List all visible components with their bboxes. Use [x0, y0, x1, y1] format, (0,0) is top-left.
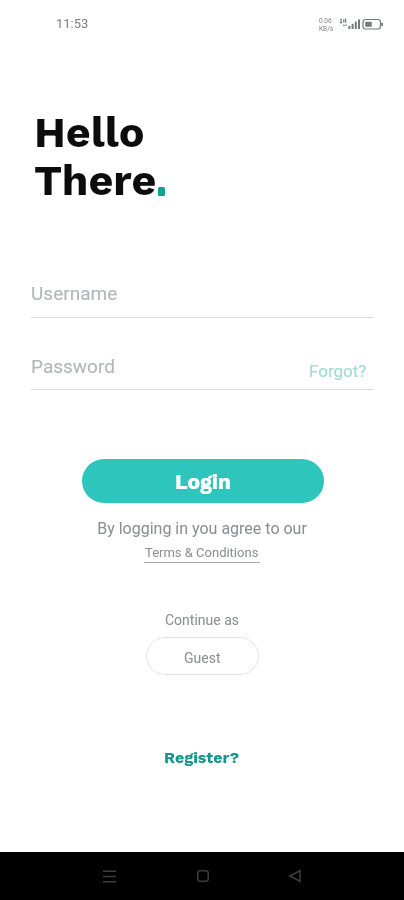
- staticText: Hello: [34, 107, 145, 157]
- button[interactable]: Back: [275, 856, 315, 896]
- staticText: Password: [31, 355, 115, 377]
- staticText: 11:53: [56, 16, 89, 31]
- staticText: 0.06: [319, 17, 332, 25]
- button[interactable]: Forgot?: [309, 361, 367, 381]
- staticText: Forgot?: [309, 361, 367, 381]
- staticText: Terms & Conditions: [145, 545, 259, 560]
- button[interactable]: Recent apps: [89, 856, 129, 896]
- staticText: Continue as: [0, 612, 404, 628]
- staticText: Guest: [184, 650, 221, 666]
- button[interactable]: Terms & Conditions: [144, 545, 260, 563]
- staticText: There: [34, 155, 157, 205]
- staticText: Username: [31, 282, 118, 304]
- staticText: KB/s: [319, 25, 334, 33]
- staticText: By logging in you agree to our: [0, 519, 404, 538]
- button[interactable]: Home: [183, 856, 223, 896]
- staticText: Login: [175, 469, 231, 494]
- button[interactable]: Register?: [164, 748, 240, 767]
- button[interactable]: Guest: [146, 637, 259, 675]
- staticText: Register?: [164, 748, 240, 767]
- button[interactable]: Login: [82, 459, 324, 503]
